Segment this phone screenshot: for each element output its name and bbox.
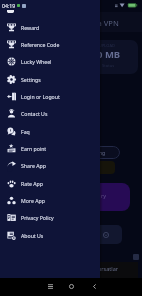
button[interactable]: Contact Us [0, 105, 100, 122]
staticText: ng [99, 150, 106, 157]
button[interactable]: Settings [0, 71, 100, 88]
staticText: Settings [21, 76, 41, 83]
staticText: ry [101, 192, 107, 199]
staticText: Status [102, 63, 115, 69]
button[interactable]: Back [88, 280, 101, 293]
staticText: More App [21, 197, 45, 204]
staticText: Reference Code [21, 41, 60, 48]
staticText: 04:19 [2, 2, 16, 9]
staticText: Login or Logout [21, 93, 60, 100]
staticText: Rate App [21, 180, 43, 187]
button[interactable]: Recents [44, 280, 57, 293]
staticText: Contact Us [21, 110, 48, 117]
staticText: Privacy Policy [21, 214, 54, 221]
staticText: Reward [21, 24, 40, 31]
button[interactable]: Reference Code [0, 36, 100, 53]
button[interactable]: Earn point [0, 140, 100, 157]
button[interactable]: More App [0, 192, 100, 209]
button[interactable]: Share App [0, 157, 100, 174]
staticText: Faq [21, 128, 30, 135]
staticText: UPLOAD [99, 43, 115, 48]
staticText: Earn point [21, 145, 47, 152]
button[interactable]: About Us [0, 227, 100, 244]
staticText: 0 MB [97, 48, 121, 61]
staticText: Sera VPN [86, 18, 119, 28]
button[interactable]: Home [65, 280, 78, 293]
staticText: Share App [21, 162, 46, 169]
staticText: Fırsatlar [97, 265, 119, 272]
staticText: Lucky Wheel [21, 58, 52, 65]
button[interactable]: Login or Logout [0, 88, 100, 105]
staticText: About Us [21, 232, 44, 239]
button[interactable]: Lucky Wheel [0, 53, 100, 70]
button[interactable]: Rate App [0, 175, 100, 192]
button[interactable]: Faq [0, 123, 100, 140]
button[interactable]: Privacy Policy [0, 209, 100, 226]
button[interactable]: Reward [0, 19, 100, 36]
